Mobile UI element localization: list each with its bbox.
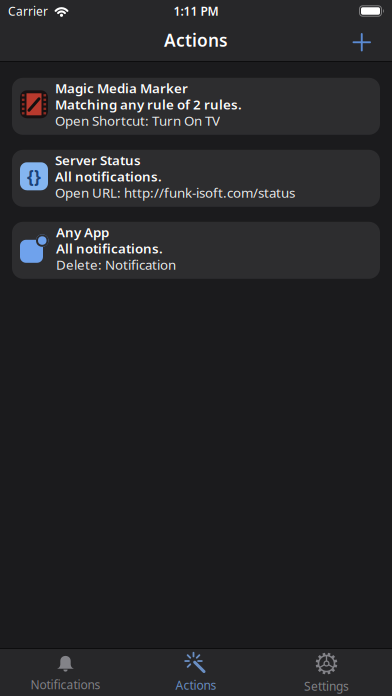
button[interactable]: Any App [12, 222, 380, 279]
staticText: Open Shortcut: Turn On TV [55, 112, 220, 129]
staticText: Matching any rule of 2 rules. [55, 95, 242, 113]
staticText: Settings [304, 678, 349, 694]
staticText: 1:11 PM [173, 3, 218, 19]
button[interactable]: {} [12, 150, 380, 207]
button[interactable]: Add [340, 22, 384, 60]
staticText: Server Status [55, 151, 141, 169]
staticText: Open URL: http://funk-isoft.com/status [55, 184, 295, 201]
staticText: All notifications. [56, 239, 163, 257]
staticText: All notifications. [55, 167, 162, 185]
staticText: Actions [164, 28, 228, 51]
staticText: Delete: Notification [56, 256, 176, 273]
button[interactable]: Notifications [0, 649, 130, 696]
staticText: Magic Media Marker [55, 79, 188, 97]
staticText: Carrier [8, 3, 48, 19]
staticText: Notifications [30, 676, 100, 692]
button[interactable]: Settings [261, 649, 391, 696]
button[interactable]: Magic Media Marker [12, 78, 380, 135]
staticText: {} [27, 165, 41, 188]
staticText: Any App [56, 223, 109, 241]
staticText: Actions [175, 677, 216, 693]
button[interactable]: Actions [131, 649, 261, 696]
